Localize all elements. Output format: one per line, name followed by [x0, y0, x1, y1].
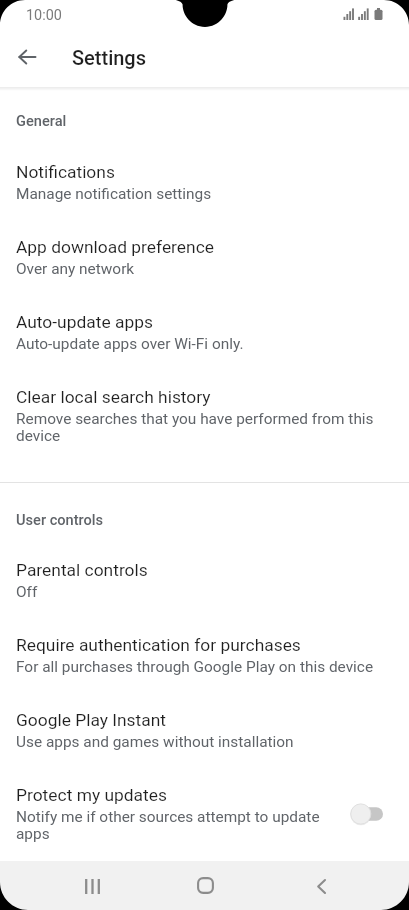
staticText: Auto-update apps — [16, 312, 153, 332]
staticText: Notify me if other sources attempt to up… — [16, 808, 341, 843]
staticText: Parental controls — [16, 560, 148, 580]
button[interactable]: App download preference — [0, 220, 409, 295]
staticText: Protect my updates — [16, 785, 167, 805]
staticText: Over any network — [16, 260, 135, 278]
staticText: 10:00 — [26, 7, 62, 24]
button[interactable]: Parental controls — [0, 543, 409, 618]
staticText: Remove searches that you have performed … — [16, 410, 393, 445]
staticText: General — [16, 112, 67, 129]
button[interactable]: Clear local search history — [0, 370, 409, 462]
button[interactable]: Notifications — [0, 145, 409, 220]
staticText: Notifications — [16, 162, 115, 182]
button[interactable]: Auto-update apps — [0, 295, 409, 370]
button[interactable]: Recent apps — [60, 861, 124, 910]
staticText: Clear local search history — [16, 387, 211, 407]
staticText: Auto-update apps over Wi-Fi only. — [16, 335, 244, 353]
button[interactable]: Navigate up — [3, 33, 51, 81]
button[interactable]: Require authentication for purchases — [0, 618, 409, 693]
staticText: For all purchases through Google Play on… — [16, 658, 374, 676]
staticText: Settings — [72, 46, 147, 69]
staticText: App download preference — [16, 237, 214, 257]
staticText: Google Play Instant — [16, 710, 167, 730]
button[interactable]: Protect my updates — [0, 768, 409, 860]
staticText: User controls — [16, 511, 104, 528]
staticText: Off — [16, 583, 38, 601]
staticText: Require authentication for purchases — [16, 635, 301, 655]
button[interactable]: Google Play Instant — [0, 693, 409, 768]
button[interactable]: Home — [173, 861, 237, 910]
staticText: Use apps and games without installation — [16, 733, 294, 751]
button[interactable]: Protect my updates switch, off — [347, 797, 393, 831]
button[interactable]: Back — [289, 861, 353, 910]
staticText: Manage notification settings — [16, 185, 212, 203]
